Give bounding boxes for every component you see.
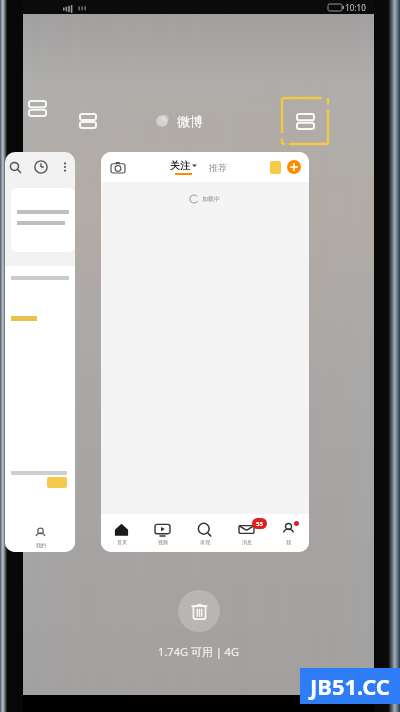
staticText: 我的 (36, 542, 46, 548)
staticText: 加载中 (202, 195, 220, 203)
staticText: 首页 (117, 539, 127, 545)
button[interactable]: 视频 (142, 514, 183, 552)
button[interactable]: 推荐 (209, 162, 227, 173)
button[interactable]: Split screen focused (282, 98, 328, 144)
staticText: 发现 (200, 539, 210, 545)
staticText: 视频 (158, 539, 168, 545)
staticText: 1.74G 可用 | 4G (158, 644, 239, 659)
button[interactable]: Split screen left (75, 108, 101, 134)
staticText: 关注 (170, 159, 190, 172)
button[interactable]: Clear all (178, 590, 220, 632)
button[interactable]: 关注 (170, 159, 197, 175)
staticText: 55 (256, 520, 263, 528)
staticText: 微博 (177, 113, 203, 129)
staticText: 我 (286, 539, 291, 545)
button[interactable]: Gift (270, 161, 281, 174)
staticText: 10:10 (345, 2, 366, 13)
button[interactable]: Compose (287, 160, 301, 174)
button[interactable]: 发现 (183, 514, 225, 552)
button[interactable]: Camera (109, 158, 127, 176)
button[interactable]: Camera (101, 152, 309, 552)
button[interactable]: 55 (225, 514, 267, 552)
button[interactable]: 首页 (101, 514, 142, 552)
button[interactable]: Split screen (23, 94, 51, 122)
button[interactable]: 我的 (5, 152, 75, 552)
staticText: JB51.CC (310, 671, 390, 701)
button[interactable]: 我 (267, 514, 309, 552)
staticText: 消息 (242, 539, 252, 545)
